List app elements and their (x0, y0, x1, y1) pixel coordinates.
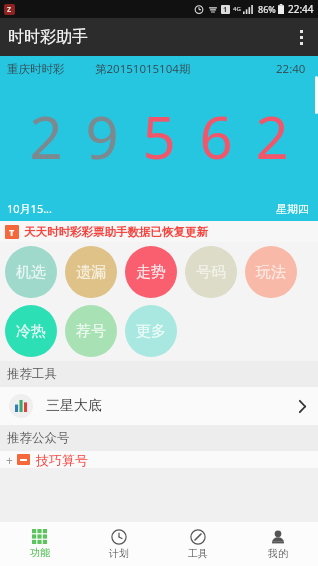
button[interactable]: 号码 (185, 246, 237, 298)
staticText: 走势 (136, 263, 166, 282)
staticText: 推荐公众号 (7, 430, 70, 446)
button[interactable]: 重庆时时彩 (0, 56, 318, 221)
staticText: 星期四 (276, 202, 309, 216)
button[interactable]: 计划 (79, 522, 158, 566)
staticText: 更多 (136, 322, 166, 341)
button[interactable]: 冷热 (5, 305, 57, 357)
button[interactable]: More options (284, 18, 318, 56)
staticText: 功能 (30, 546, 50, 559)
staticText: 我的 (268, 547, 288, 560)
staticText: 2 (255, 97, 289, 176)
staticText: 号码 (196, 263, 226, 282)
button[interactable]: T (0, 221, 318, 242)
staticText: 5 (142, 97, 176, 176)
staticText: 计划 (109, 547, 129, 560)
staticText: 22:40 (276, 61, 306, 77)
staticText: 机选 (16, 263, 46, 282)
staticText: T (9, 226, 15, 238)
staticText: Z (7, 5, 12, 15)
staticText: 4G (233, 5, 241, 13)
staticText: 6 (199, 97, 233, 176)
staticText: 10月15... (7, 201, 53, 216)
button[interactable]: 工具 (158, 522, 238, 566)
staticText: 第20151015104期 (95, 61, 191, 77)
button[interactable]: 我的 (238, 522, 318, 566)
button[interactable]: 走势 (125, 246, 177, 298)
staticText: 推荐工具 (7, 366, 57, 382)
staticText: 重庆时时彩 (7, 62, 65, 76)
staticText: 9 (85, 97, 119, 176)
staticText: 1 (223, 5, 228, 14)
staticText: 天天时时彩彩票助手数据已恢复更新 (24, 225, 208, 239)
staticText: 遗漏 (76, 263, 106, 282)
staticText: 2 (29, 97, 63, 176)
staticText: 冷热 (16, 322, 46, 341)
button[interactable]: + (0, 451, 318, 468)
button[interactable]: 机选 (5, 246, 57, 298)
button[interactable]: 玩法 (245, 246, 297, 298)
button[interactable]: 三星大底 (0, 387, 318, 425)
staticText: 22:44 (288, 2, 314, 16)
button[interactable]: 更多 (125, 305, 177, 357)
staticText: 技巧算号 (36, 452, 88, 468)
button[interactable]: 荐号 (65, 305, 117, 357)
staticText: 荐号 (76, 322, 106, 341)
staticText: 86% (258, 3, 276, 15)
staticText: 时时彩助手 (8, 27, 88, 47)
staticText: 工具 (188, 547, 208, 560)
staticText: 玩法 (256, 263, 286, 282)
staticText: 三星大底 (46, 397, 102, 415)
button[interactable]: 功能 (0, 522, 79, 566)
staticText: + (6, 452, 13, 468)
button[interactable]: 遗漏 (65, 246, 117, 298)
